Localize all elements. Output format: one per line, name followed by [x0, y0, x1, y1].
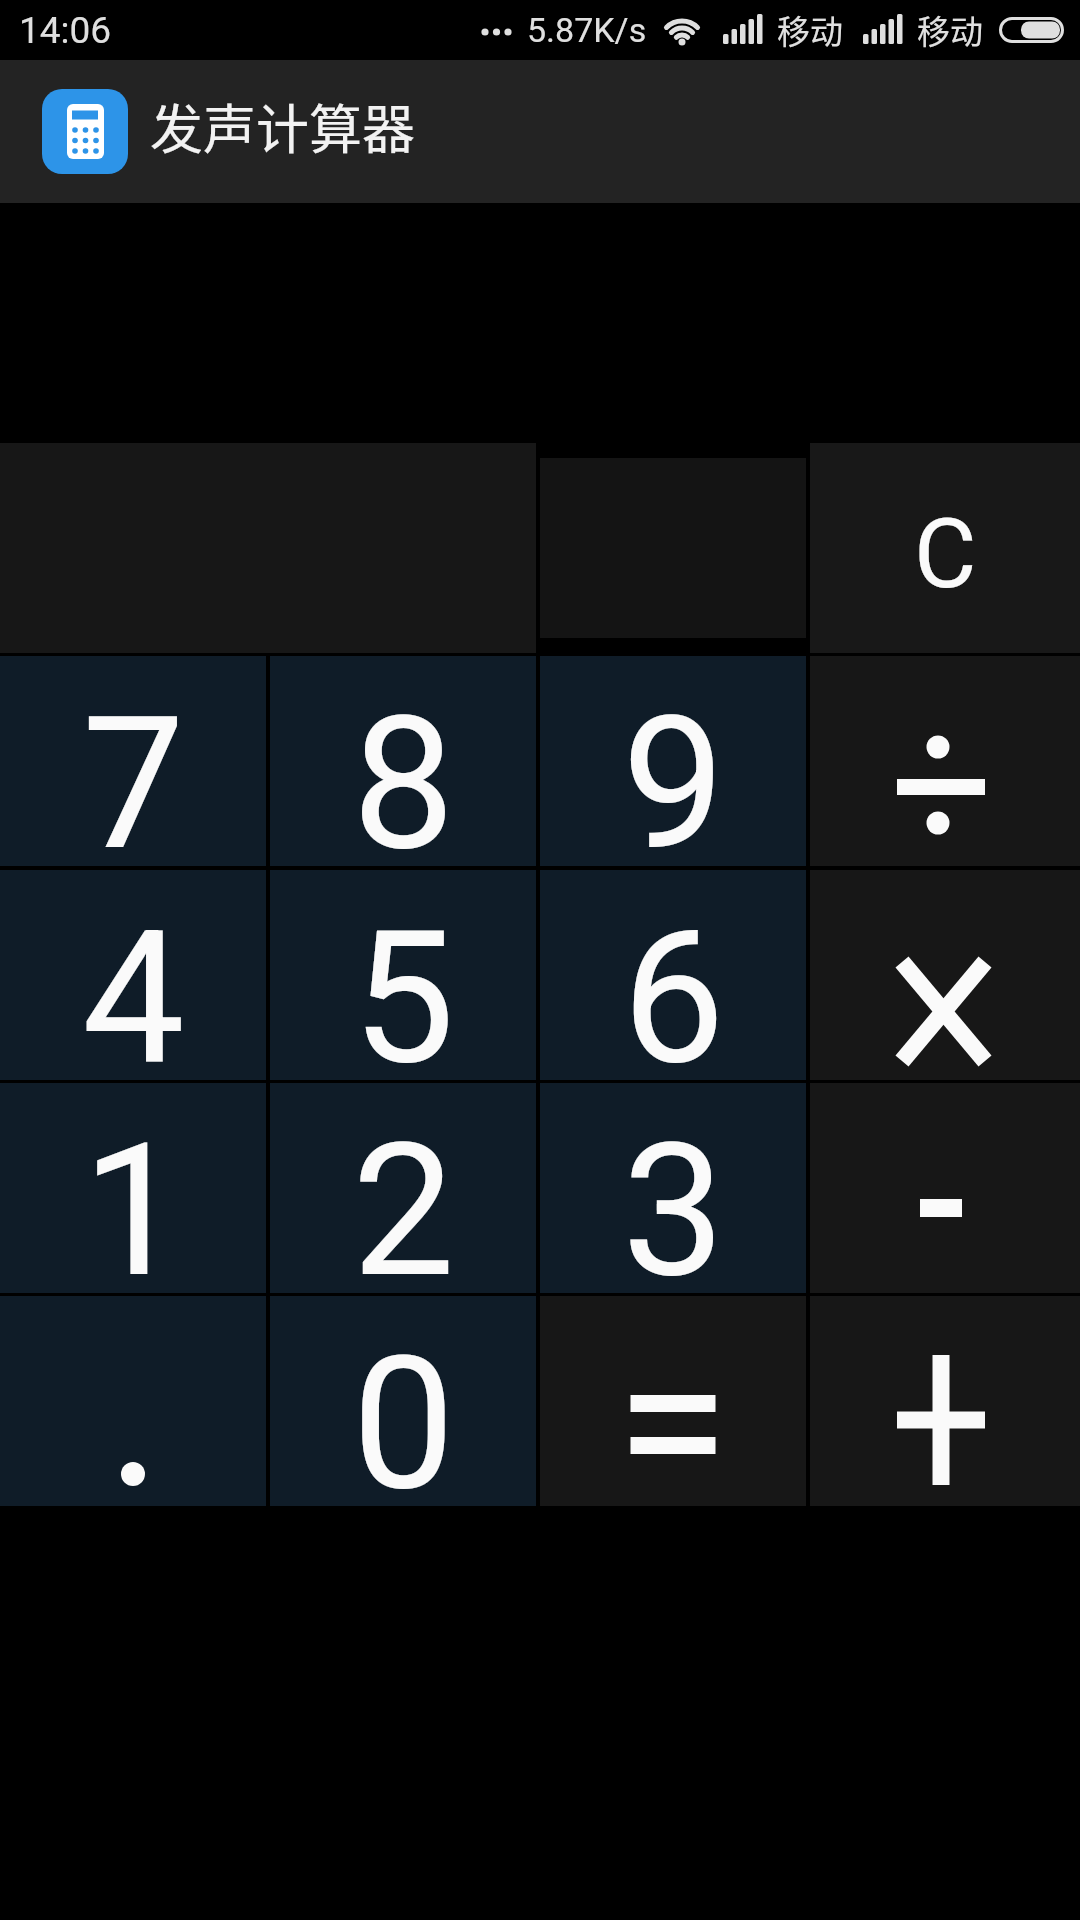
- button[interactable]: [810, 656, 1080, 866]
- button[interactable]: 7: [0, 656, 266, 866]
- button[interactable]: [540, 1296, 806, 1506]
- button[interactable]: 4: [0, 870, 266, 1080]
- staticText: 4: [82, 891, 185, 1101]
- button[interactable]: 3: [540, 1083, 806, 1293]
- button[interactable]: 9: [540, 656, 806, 866]
- staticText: 9: [622, 677, 725, 887]
- staticText: 2: [352, 1104, 455, 1314]
- staticText: 7: [82, 677, 185, 887]
- staticText: 8: [352, 677, 455, 887]
- button[interactable]: [810, 870, 1080, 1080]
- staticText: 3: [622, 1104, 725, 1314]
- staticText: C: [914, 498, 977, 611]
- button[interactable]: [540, 443, 806, 653]
- button[interactable]: 8: [270, 656, 536, 866]
- button[interactable]: 1: [0, 1083, 266, 1293]
- staticText: 移动: [917, 6, 983, 54]
- button[interactable]: [810, 1083, 1080, 1293]
- button[interactable]: 5: [270, 870, 536, 1080]
- staticText: 14:06: [19, 9, 112, 52]
- button[interactable]: 0: [270, 1296, 536, 1506]
- staticText: 5: [352, 891, 455, 1101]
- button[interactable]: [810, 1296, 1080, 1506]
- staticText: 0: [352, 1317, 455, 1527]
- button[interactable]: C: [810, 443, 1080, 653]
- staticText: 6: [622, 891, 725, 1101]
- staticText: 5.87K/s: [527, 10, 647, 50]
- staticText: 1: [82, 1104, 185, 1314]
- button[interactable]: 2: [270, 1083, 536, 1293]
- button[interactable]: [0, 1296, 266, 1506]
- staticText: 移动: [777, 6, 843, 54]
- button[interactable]: 6: [540, 870, 806, 1080]
- staticText: 发声计算器: [150, 88, 415, 165]
